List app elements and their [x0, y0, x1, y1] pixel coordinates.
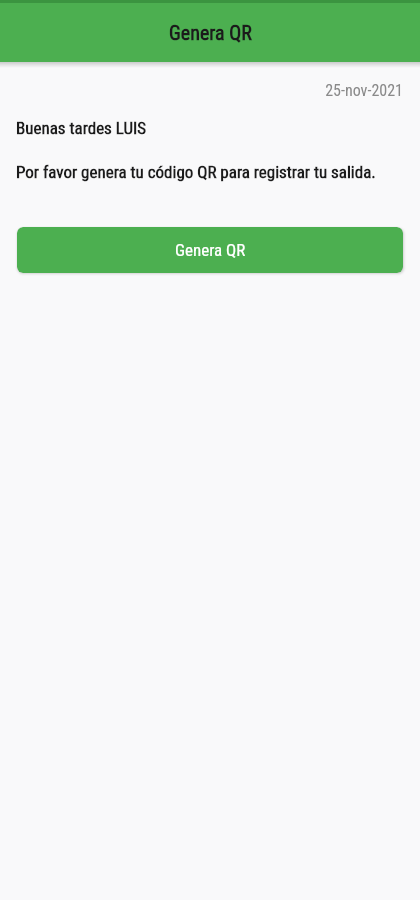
button[interactable]: Genera QR	[17, 227, 403, 273]
staticText: 25-nov-2021	[0, 81, 403, 100]
staticText: Buenas tardes LUIS	[16, 118, 146, 138]
staticText: Genera QR	[175, 240, 246, 260]
button[interactable]: Genera QR	[0, 3, 420, 62]
staticText: Genera QR	[169, 21, 252, 44]
staticText: Por favor genera tu código QR para regis…	[16, 162, 376, 182]
